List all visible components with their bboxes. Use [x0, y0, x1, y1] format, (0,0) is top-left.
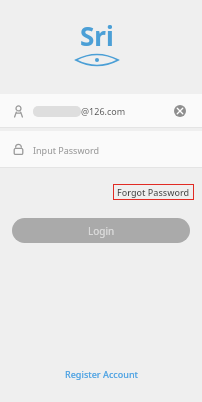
staticText: Sri [80, 18, 114, 53]
staticText: Register Account [65, 368, 138, 380]
button[interactable]: Login [12, 218, 190, 243]
staticText: @126.com [81, 105, 126, 117]
button[interactable]: Forgot Password [113, 184, 194, 200]
button[interactable]: Register Account [57, 364, 146, 384]
button[interactable]: @126.com [0, 94, 202, 127]
button[interactable]: Input Password [0, 131, 202, 167]
staticText: Login [88, 224, 115, 238]
staticText: Forgot Password [117, 186, 190, 198]
staticText: Input Password [33, 144, 100, 156]
button[interactable]: Clear email [170, 101, 190, 121]
